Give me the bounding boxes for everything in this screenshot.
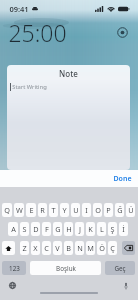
button[interactable]: J	[75, 222, 84, 236]
staticText: H	[66, 224, 72, 234]
button[interactable]: Shift	[2, 241, 15, 255]
staticText: L	[100, 224, 104, 234]
staticText: K	[88, 224, 93, 234]
button[interactable]: Ğ	[115, 203, 124, 217]
button[interactable]: F	[42, 222, 51, 236]
staticText: Note	[59, 68, 78, 79]
button[interactable]: Backspace	[122, 241, 135, 255]
staticText: Y	[62, 205, 67, 215]
button[interactable]: V	[53, 241, 62, 255]
button[interactable]: L	[97, 222, 106, 236]
button[interactable]: E	[26, 203, 36, 217]
staticText: 25:00	[8, 17, 67, 47]
staticText: R	[40, 205, 45, 215]
staticText: B	[66, 243, 71, 253]
button[interactable]: W	[14, 203, 24, 217]
button[interactable]: I	[82, 203, 91, 217]
staticText: C	[44, 243, 49, 253]
staticText: Done	[113, 174, 132, 184]
staticText: E	[29, 205, 34, 215]
button[interactable]: Ö	[97, 241, 106, 255]
staticText: V	[55, 243, 60, 253]
button[interactable]: Ü	[126, 203, 135, 217]
button[interactable]: A	[8, 222, 18, 236]
staticText: Q	[4, 205, 10, 215]
staticText: Start Writing	[12, 83, 47, 91]
staticText: 123	[9, 264, 20, 273]
staticText: 09:41	[9, 4, 29, 14]
staticText: Ö	[99, 243, 105, 253]
staticText: J	[79, 224, 81, 234]
button[interactable]: Ş	[108, 222, 117, 236]
button[interactable]: Boşluk	[30, 261, 101, 275]
button[interactable]: D	[31, 222, 40, 236]
button[interactable]: Done	[113, 174, 132, 184]
button[interactable]: S	[20, 222, 29, 236]
staticText: A	[11, 224, 16, 234]
staticText: W	[16, 205, 23, 215]
button[interactable]: Next keyboard	[9, 282, 16, 289]
button[interactable]: T	[49, 203, 58, 217]
button[interactable]: U	[71, 203, 80, 217]
button[interactable]: 123	[2, 261, 26, 275]
staticText: T	[51, 205, 56, 215]
button[interactable]: G	[53, 222, 62, 236]
staticText: I	[85, 205, 88, 215]
button[interactable]: K	[86, 222, 95, 236]
button[interactable]: B	[64, 241, 73, 255]
staticText: P	[106, 205, 111, 215]
staticText: Boşluk	[56, 264, 76, 273]
button[interactable]: R	[38, 203, 47, 217]
staticText: N	[77, 243, 83, 253]
button[interactable]: H	[64, 222, 73, 236]
staticText: Ğ	[117, 205, 123, 215]
staticText: S	[22, 224, 27, 234]
staticText: F	[45, 224, 49, 234]
button[interactable]: Dictate	[124, 282, 128, 290]
staticText: İ	[122, 224, 125, 234]
staticText: Ş	[110, 224, 115, 234]
button[interactable]: Geç	[105, 261, 135, 275]
button[interactable]: O	[93, 203, 102, 217]
staticText: D	[33, 224, 39, 234]
button[interactable]: Q	[2, 203, 12, 217]
staticText: M	[87, 243, 94, 253]
button[interactable]: N	[75, 241, 84, 255]
button[interactable]: M	[86, 241, 95, 255]
staticText: U	[73, 205, 79, 215]
button[interactable]: X	[31, 241, 40, 255]
staticText: Z	[22, 243, 27, 253]
button[interactable]: C	[42, 241, 51, 255]
button[interactable]: Z	[20, 241, 29, 255]
staticText: Ç	[110, 243, 115, 253]
staticText: X	[33, 243, 38, 253]
button[interactable]: Y	[60, 203, 69, 217]
staticText: Geç	[114, 264, 126, 273]
button[interactable]: Ç	[108, 241, 117, 255]
staticText: G	[55, 224, 61, 234]
staticText: Ü	[128, 205, 134, 215]
button[interactable]: P	[104, 203, 113, 217]
staticText: O	[95, 205, 101, 215]
button[interactable]: Focus	[117, 27, 128, 38]
button[interactable]: İ	[119, 222, 128, 236]
